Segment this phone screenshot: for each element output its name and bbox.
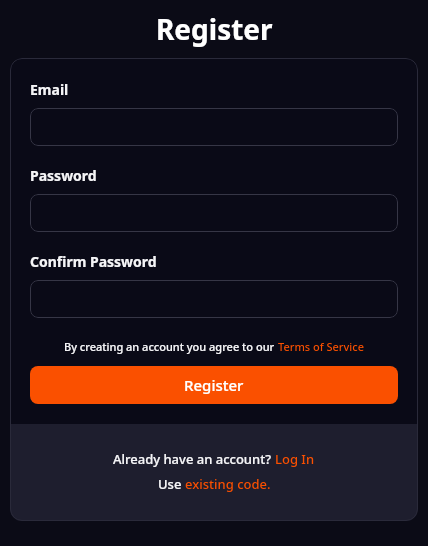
staticText: Register [184, 375, 244, 395]
staticText: Already have an account? [113, 450, 275, 468]
staticText: By creating an account you agree to our [64, 339, 278, 354]
button[interactable]: existing code. [185, 475, 271, 493]
staticText: Confirm Password [30, 252, 157, 271]
button[interactable]: Log In [275, 450, 315, 468]
staticText: Terms of Service [278, 339, 365, 354]
button[interactable] [30, 280, 398, 318]
button[interactable] [30, 108, 398, 146]
button[interactable] [30, 194, 398, 232]
staticText: Use [158, 475, 185, 493]
staticText: Email [30, 80, 69, 99]
staticText: Password [30, 166, 97, 185]
button[interactable]: Register [30, 366, 398, 404]
button[interactable]: Terms of Service [278, 339, 365, 354]
staticText: existing code. [185, 475, 271, 493]
staticText: Register [156, 10, 273, 48]
staticText: Log In [275, 450, 315, 468]
